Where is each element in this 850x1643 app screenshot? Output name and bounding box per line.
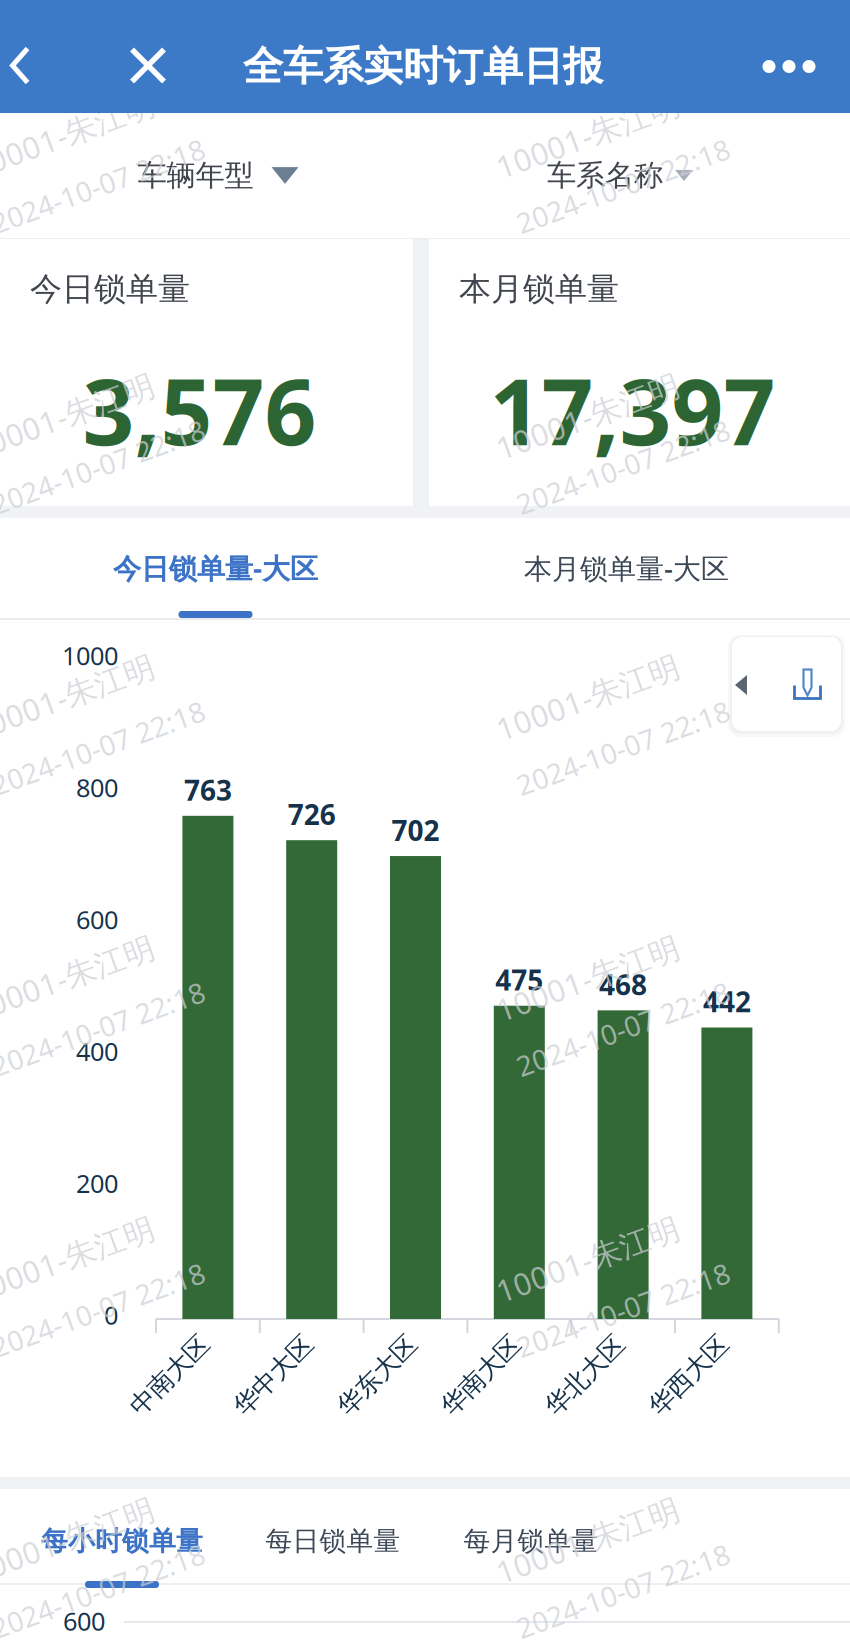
staticText: 每小时锁单量 [41,1524,203,1558]
staticText: 华东大区 [334,1377,434,1409]
staticText: 2024-10-07 22:18 [497,731,722,768]
staticText: 2024-10-07 22:18 [497,1574,722,1611]
staticText: 每月锁单量 [463,1524,598,1558]
staticText: 726 [288,796,336,833]
staticText: 华南大区 [438,1377,538,1409]
button[interactable]: 每月锁单量 [446,1489,616,1601]
staticText: 442 [703,983,751,1020]
staticText: 1000 [62,639,118,672]
staticText: 468 [599,966,647,1003]
staticText: 2024-10-07 22:18 [0,731,197,768]
staticText: 2024-10-07 22:18 [0,1293,197,1330]
staticText: 10001-朱江明 [0,107,165,149]
staticText: 10001-朱江明 [497,669,690,711]
staticText: 2024-10-07 22:18 [497,450,722,487]
staticText: 2024-10-07 22:18 [497,1012,722,1049]
staticText: 17,397 [489,350,775,470]
staticText: 0 [104,1298,118,1332]
staticText: 本月锁单量 [459,269,619,309]
staticText: 475 [495,961,543,998]
staticText: 10001-朱江明 [497,107,690,149]
staticText: 10001-朱江明 [0,950,165,992]
staticText: 2024-10-07 22:18 [0,1012,197,1049]
button[interactable]: Download chart [777,637,839,731]
staticText: 10001-朱江明 [497,950,690,992]
staticText: 10001-朱江明 [0,669,165,711]
staticText: 2024-10-07 22:18 [0,1574,197,1611]
staticText: 800 [76,771,118,804]
staticText: 3,576 [82,350,316,470]
button[interactable]: Back [0,9,57,122]
staticText: 10001-朱江明 [0,1512,165,1554]
staticText: 本月锁单量-大区 [524,549,729,587]
staticText: 每日锁单量 [265,1524,400,1558]
button[interactable]: 每小时锁单量 [24,1489,220,1601]
staticText: 今日锁单量-大区 [113,549,318,587]
staticText: 10001-朱江明 [497,388,690,430]
button[interactable]: 今日锁单量-大区 [3,518,428,620]
staticText: 763 [184,771,232,808]
staticText: 2024-10-07 22:18 [0,450,197,487]
staticText: 2024-10-07 22:18 [0,169,197,206]
button[interactable]: 车系名称 [490,113,750,238]
staticText: 10001-朱江明 [0,1231,165,1273]
staticText: 702 [391,811,439,849]
staticText: 600 [76,902,118,936]
staticText: 中南大区 [127,1377,227,1409]
staticText: 车辆年型 [137,157,253,194]
staticText: 2024-10-07 22:18 [497,169,722,206]
staticText: 今日锁单量 [30,269,190,309]
staticText: 400 [76,1034,118,1068]
staticText: 2024-10-07 22:18 [497,1293,722,1330]
staticText: 600 [63,1604,105,1638]
staticText: 华西大区 [646,1377,746,1409]
staticText: 10001-朱江明 [0,388,165,430]
staticText: 全车系实时订单日报 [243,41,603,92]
button[interactable]: More options [734,10,844,123]
button[interactable]: Close [103,9,193,122]
staticText: 车系名称 [547,157,663,194]
staticText: 华中大区 [231,1377,331,1409]
button[interactable]: 车辆年型 [78,113,358,238]
staticText: 10001-朱江明 [497,1512,690,1554]
staticText: 10001-朱江明 [497,1231,690,1273]
staticText: 华北大区 [542,1377,642,1409]
button[interactable]: 每日锁单量 [248,1489,418,1601]
button[interactable]: 本月锁单量-大区 [414,518,839,620]
staticText: 200 [76,1166,118,1200]
